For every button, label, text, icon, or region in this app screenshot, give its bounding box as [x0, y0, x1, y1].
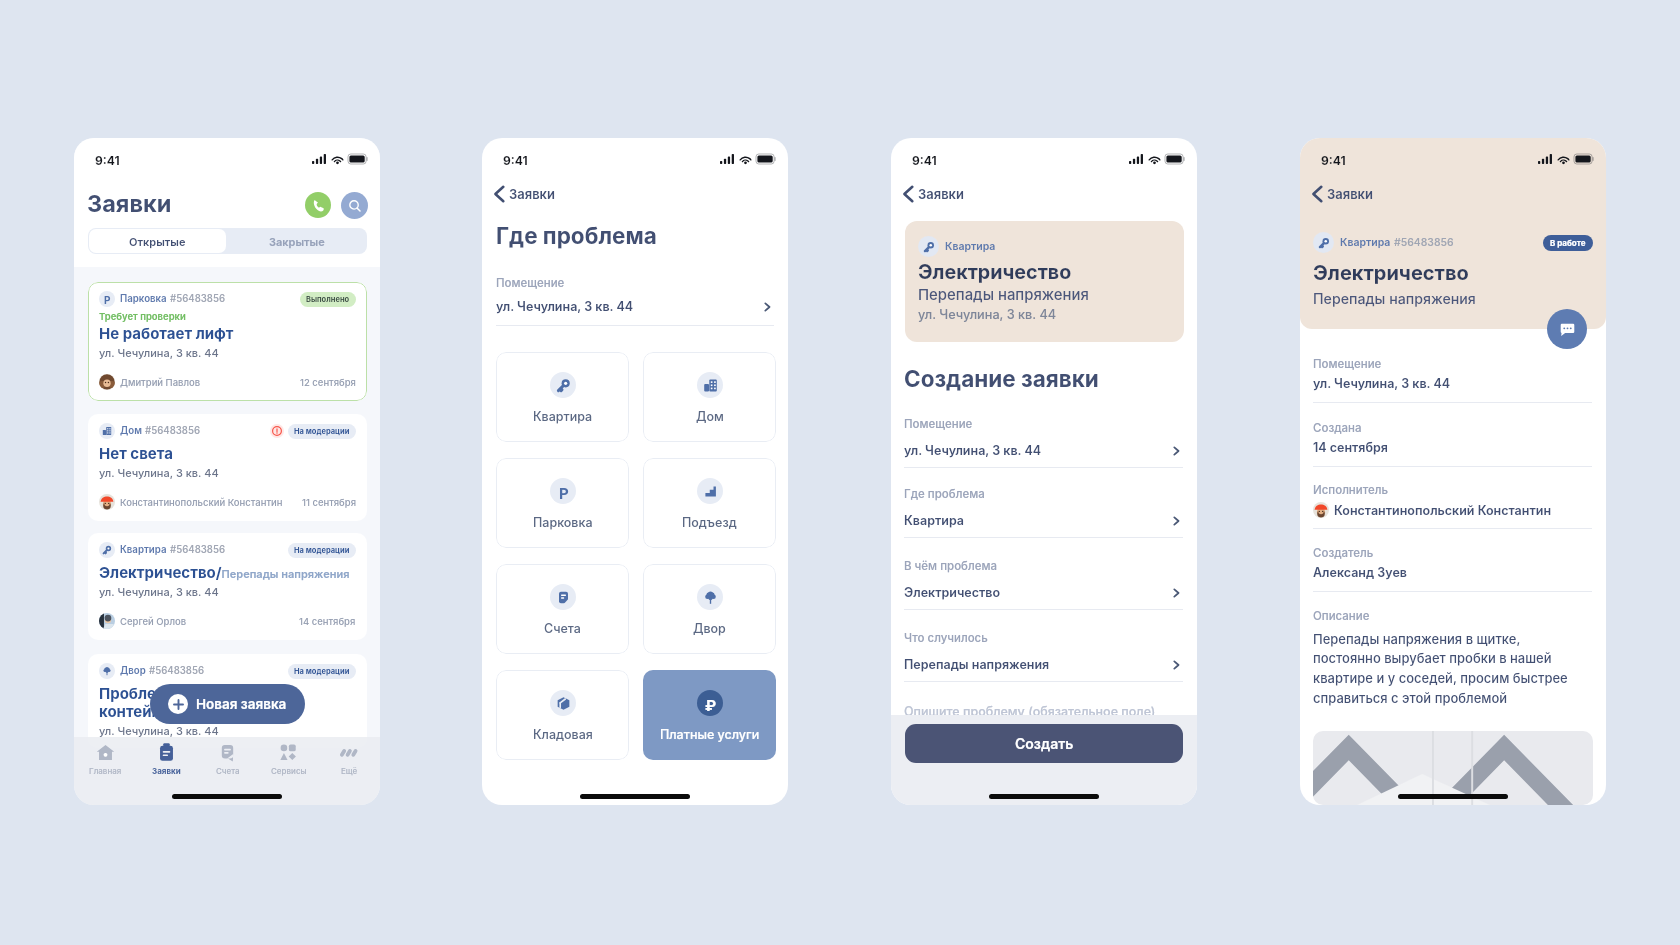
button[interactable]: В работе	[1550, 238, 1586, 248]
staticText: контейнерами	[99, 702, 210, 720]
staticText: Где проблема	[904, 487, 985, 501]
button[interactable]: Заявки	[136, 737, 197, 781]
staticText: В работе	[1550, 238, 1586, 248]
button[interactable]: Заявки	[902, 185, 964, 203]
staticText: Проблема с	[99, 684, 190, 702]
staticText: 12 сентября	[300, 377, 356, 388]
staticText: Помещение	[496, 276, 565, 290]
button[interactable]: Сервисы	[258, 737, 319, 781]
button[interactable]: Двор	[643, 564, 776, 654]
staticText: P	[104, 294, 111, 304]
button[interactable]: Квартира	[88, 533, 367, 640]
staticText: Счета	[216, 766, 240, 776]
button[interactable]: Заявки	[1311, 185, 1373, 203]
staticText: ул. Чечулина, 3 кв. 44	[99, 346, 219, 359]
staticText: ул. Чечулина, 3 кв. 44	[99, 466, 219, 479]
staticText: Александ Зуев	[1313, 565, 1407, 580]
staticText: Закрытые	[269, 235, 325, 248]
staticText: Нет света	[99, 444, 173, 462]
button[interactable]: Квартира	[496, 352, 629, 442]
staticText: Ещё	[341, 766, 358, 776]
staticText: Дом	[696, 409, 724, 424]
staticText: 9:41	[503, 153, 528, 168]
staticText: Кладовая	[533, 727, 593, 742]
staticText: 9:41	[95, 153, 120, 168]
staticText: ул. Чечулина, 3 кв. 44	[918, 307, 1057, 322]
staticText: Создание заявки	[904, 365, 1099, 392]
staticText: ул. Чечулина, 3 кв. 44	[496, 299, 634, 314]
staticText: Двор	[120, 665, 146, 677]
button[interactable]: Ещё	[319, 737, 380, 781]
button[interactable]: ул. Чечулина, 3 кв. 44	[496, 299, 774, 314]
button[interactable]: Подъезд	[643, 458, 776, 548]
staticText: На модерации	[294, 667, 350, 676]
staticText: Сервисы	[271, 766, 307, 776]
staticText: Заявки	[152, 766, 181, 776]
staticText: 14 сентября	[1313, 440, 1388, 455]
staticText: Электричество	[904, 585, 1001, 600]
staticText: Главная	[89, 766, 122, 776]
staticText: Требует проверки	[99, 311, 186, 322]
staticText: Квартира	[904, 513, 964, 528]
button[interactable]: Счета	[197, 737, 258, 781]
staticText: #56483856	[1394, 236, 1454, 249]
staticText: #56483856	[145, 425, 200, 437]
button[interactable]: Search	[341, 192, 368, 219]
staticText: Перепады напряжения	[1313, 290, 1476, 307]
staticText: 14 сентября	[299, 616, 356, 627]
button[interactable]: Новая заявка	[150, 684, 305, 724]
staticText: Что случилось	[904, 631, 988, 645]
staticText: Сергей Орлов	[120, 616, 187, 627]
button[interactable]: Квартира	[904, 513, 1183, 528]
staticText: ₽	[705, 696, 717, 711]
button[interactable]: Двор	[88, 654, 367, 748]
button[interactable]: Счета	[496, 564, 629, 654]
staticText: Опишите проблему (обязательное поле)	[904, 704, 1156, 719]
staticText: Квартира	[1340, 236, 1391, 249]
staticText: #56483856	[170, 293, 225, 305]
button[interactable]: Создать	[905, 724, 1183, 763]
staticText: Создана	[1313, 421, 1362, 435]
staticText: Заявки	[87, 189, 172, 217]
staticText: Электричество/Перепады напряжения	[99, 563, 350, 581]
button[interactable]: P	[496, 458, 629, 548]
button[interactable]: Дом	[643, 352, 776, 442]
staticText: Создатель	[1313, 546, 1374, 560]
staticText: 11 сентября	[302, 497, 356, 508]
staticText: Константинопольский Константин	[1334, 503, 1552, 518]
staticText: Дмитрий Павлов	[120, 377, 201, 388]
staticText: #56483856	[170, 544, 225, 556]
staticText: Дом	[120, 425, 142, 437]
button[interactable]: Call	[305, 192, 331, 218]
staticText: Заявки	[509, 186, 555, 202]
button[interactable]: Заявки	[493, 185, 555, 203]
staticText: Не работает лифт	[99, 324, 234, 342]
staticText: Выполнено	[306, 295, 350, 304]
staticText: Электричество	[1313, 261, 1469, 285]
button[interactable]: Открытые	[89, 229, 226, 253]
staticText: Парковка	[120, 293, 167, 305]
staticText: Исполнитель	[1313, 483, 1389, 497]
button[interactable]: Перепады напряжения	[904, 657, 1183, 672]
button[interactable]: ул. Чечулина, 3 кв. 44	[904, 443, 1183, 458]
staticText: Счета	[544, 621, 581, 636]
staticText: P	[559, 484, 569, 499]
staticText: Константинопольский Константин	[120, 497, 283, 508]
staticText: ул. Чечулина, 3 кв. 44	[99, 724, 219, 737]
button[interactable]: Кладовая	[496, 670, 629, 760]
staticText: Помещение	[904, 417, 973, 431]
button[interactable]: Электричество	[904, 585, 1183, 600]
button[interactable]: P	[88, 282, 367, 401]
staticText: Создать	[1015, 735, 1074, 752]
button[interactable]: Chat	[1547, 309, 1587, 349]
staticText: Открытые	[129, 235, 186, 248]
button[interactable]: Дом	[88, 414, 367, 521]
staticText: Квартира	[120, 544, 167, 556]
staticText: Заявки	[918, 186, 964, 202]
button[interactable]: ₽	[643, 670, 776, 760]
staticText: Двор	[693, 621, 726, 636]
staticText: Парковка	[533, 515, 593, 530]
button[interactable]: Закрытые	[227, 228, 367, 254]
staticText: 9:41	[912, 153, 937, 168]
button[interactable]: Главная	[74, 737, 136, 781]
